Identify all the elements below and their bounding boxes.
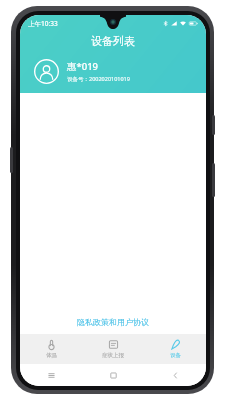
staticText: 设备 [170,352,181,359]
button[interactable]: Profile [34,59,130,84]
staticText: 体温 [46,352,57,359]
button[interactable]: Home [82,364,144,386]
other: Profile [34,59,59,84]
staticText: 症状上报 [102,352,124,359]
button[interactable]: Recents [20,364,82,386]
button[interactable]: Back [144,364,206,386]
button[interactable]: 症状上报 [82,334,144,364]
staticText: 惠*019 [67,60,99,73]
staticText: 设备号：2002020101019 [67,75,130,83]
staticText: 上午10:33 [28,19,58,28]
button[interactable]: 设备 [144,334,206,364]
button[interactable]: 体温 [20,334,82,364]
button[interactable]: 隐私政策和用户协议 [77,317,149,327]
staticText: 设备列表 [91,34,135,48]
